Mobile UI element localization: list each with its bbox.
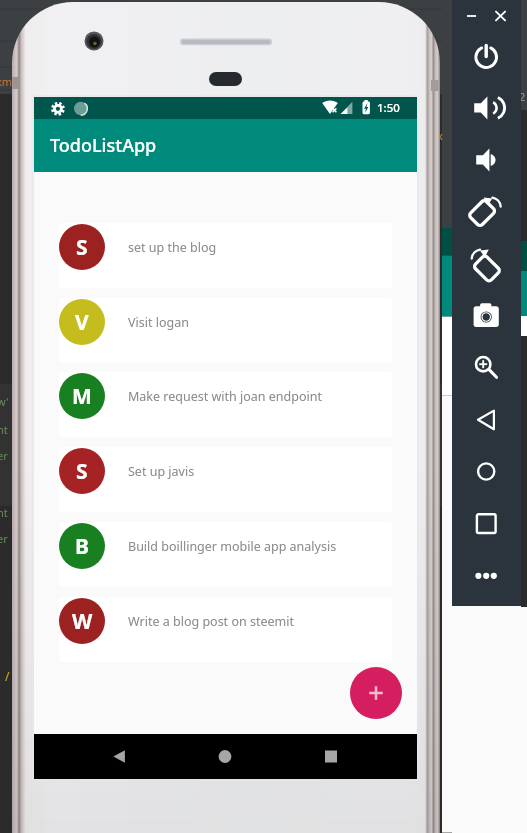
staticText: ex [431, 128, 443, 143]
staticText: Make request with joan endpoint [128, 388, 322, 405]
button[interactable]: M [59, 372, 392, 437]
button[interactable]: Home [466, 451, 507, 492]
button[interactable]: More [466, 555, 507, 596]
staticText: nt [0, 505, 8, 520]
staticText: nt [0, 422, 8, 437]
button[interactable]: Rotate left [466, 191, 507, 232]
button[interactable]: Volume down [466, 140, 507, 181]
button[interactable]: Close [488, 4, 512, 28]
button[interactable]: Minimize [459, 4, 483, 28]
button[interactable]: Rotate right [466, 243, 507, 284]
button[interactable]: Overview [290, 734, 417, 779]
button[interactable]: Screenshot [466, 295, 507, 336]
staticText: Build boillinger mobile app analysis [128, 538, 337, 555]
staticText: set up the blog [128, 239, 217, 256]
staticText: 2 [519, 89, 526, 104]
staticText: / [5, 668, 10, 684]
staticText: Set up javis [128, 463, 195, 480]
button[interactable]: Overview [466, 502, 507, 543]
button[interactable]: V [59, 298, 392, 363]
staticText: 1:50 [377, 100, 400, 116]
staticText: V [75, 308, 89, 337]
staticText: xm [0, 74, 13, 89]
staticText: W [72, 607, 93, 636]
staticText: er [0, 531, 8, 546]
staticText: w' [0, 394, 9, 409]
staticText: er [0, 448, 8, 463]
staticText: Write a blog post on steemit [128, 613, 294, 630]
button[interactable]: S [59, 223, 392, 288]
staticText: Visit logan [128, 314, 189, 331]
button[interactable]: W [59, 597, 392, 662]
staticText: TodoListApp [50, 133, 157, 158]
button[interactable]: Volume up [466, 87, 507, 128]
button[interactable]: Add todo [350, 667, 402, 719]
button[interactable]: Home [162, 734, 290, 779]
staticText: B [75, 532, 89, 561]
staticText: M [72, 382, 92, 411]
button[interactable]: Back [466, 399, 507, 440]
button[interactable]: S [59, 447, 392, 512]
button[interactable]: Power [466, 36, 507, 77]
staticText: S [76, 457, 88, 486]
staticText: S [76, 233, 88, 262]
button[interactable]: B [59, 522, 392, 587]
button[interactable]: Back [34, 734, 162, 779]
button[interactable]: Zoom [466, 347, 507, 388]
